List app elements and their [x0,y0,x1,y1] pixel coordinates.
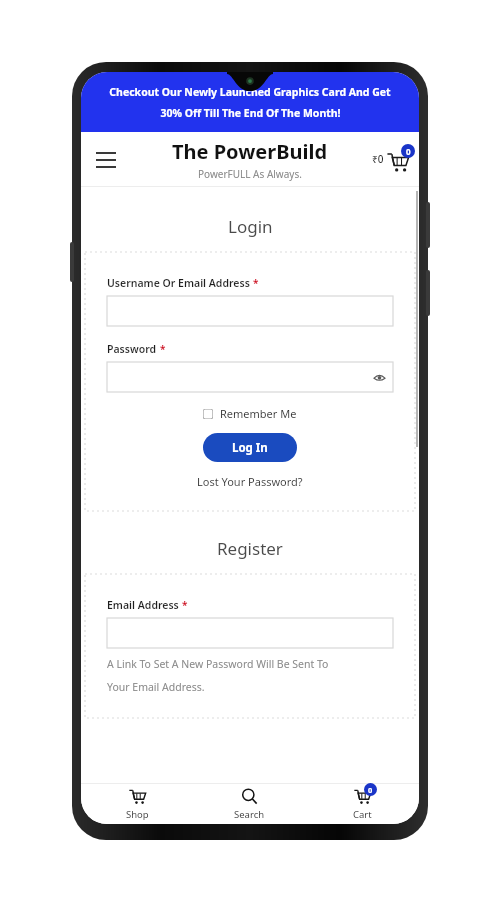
staticText: * [182,598,188,612]
staticText: ₹0 [372,152,384,166]
staticText: 0 [368,785,373,795]
staticText: Username Or Email Address [107,276,250,290]
staticText: Lost Your Password? [197,474,303,489]
staticText: A Link To Set A New Password Will Be Sen… [107,657,329,671]
staticText: Login [228,215,273,238]
staticText: Checkout Our Newly Launched Graphics Car… [109,85,391,99]
button[interactable]: Shop [81,784,193,824]
button[interactable]: Cart [372,148,409,170]
button[interactable]: Open menu [89,142,123,176]
button[interactable]: The PowerBuild [172,138,328,181]
button[interactable]: Log In [203,433,297,462]
staticText: * [160,342,166,356]
staticText: * [253,276,259,290]
button[interactable]: Checkout Our Newly Launched Graphics Car… [81,72,419,132]
button[interactable]: Lost Your Password? [197,474,303,489]
button[interactable] [107,362,393,392]
staticText: The PowerBuild [172,138,328,165]
staticText: Cart [353,808,372,821]
staticText: 0 [406,146,411,157]
staticText: Your Email Address. [107,680,205,694]
button[interactable] [107,296,393,326]
staticText: 30% Off Till The End Of The Month! [160,106,341,120]
staticText: Shop [126,808,149,821]
staticText: Password [107,342,157,356]
button[interactable]: Search [193,784,306,824]
button[interactable]: 0 [306,784,419,824]
button[interactable]: Remember Me [203,406,297,421]
staticText: Register [217,537,283,560]
staticText: Remember Me [220,406,297,421]
staticText: Email Address [107,598,179,612]
button[interactable] [107,618,393,648]
staticText: Log In [232,440,268,456]
staticText: Search [234,808,265,821]
staticText: PowerFULL As Always. [198,167,302,181]
